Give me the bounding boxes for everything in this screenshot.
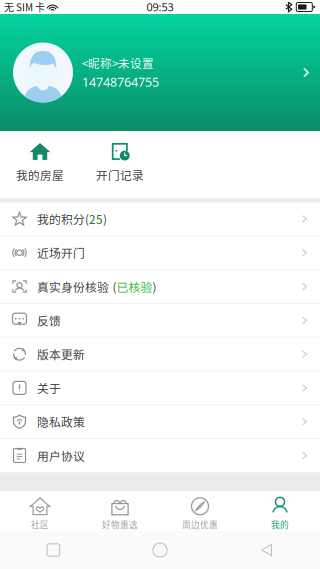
button[interactable]: 版本更新 xyxy=(0,338,320,371)
button[interactable]: Home xyxy=(107,531,213,569)
staticText: 版本更新 xyxy=(37,346,85,363)
staticText: ( xyxy=(85,210,89,227)
button[interactable]: Recent apps xyxy=(0,531,107,569)
button[interactable]: 隐私政策 xyxy=(0,405,320,439)
button[interactable]: 我的 xyxy=(240,491,320,531)
staticText: 我的积分 xyxy=(37,210,85,227)
staticText: 无 SIM 卡 xyxy=(4,0,45,14)
staticText: 09:53 xyxy=(146,0,173,14)
staticText: 隐私政策 xyxy=(37,413,85,430)
staticText: 好物惠选 xyxy=(102,518,138,531)
staticText: 我的 xyxy=(271,518,289,531)
staticText: 周边优惠 xyxy=(182,518,218,531)
button[interactable]: Back xyxy=(213,531,320,569)
button[interactable]: 社区 xyxy=(0,491,80,531)
staticText: 用户协议 xyxy=(37,447,85,464)
button[interactable]: 关于 xyxy=(0,371,320,405)
staticText: 14748764755 xyxy=(82,73,159,90)
button[interactable]: 用户协议 xyxy=(0,439,320,473)
staticText: ) xyxy=(103,210,107,227)
staticText: 关于 xyxy=(37,379,61,396)
button[interactable]: 好物惠选 xyxy=(80,491,160,531)
button[interactable]: 真实身份核验 xyxy=(0,270,320,304)
button[interactable]: 反馈 xyxy=(0,304,320,338)
staticText: 已核验 xyxy=(116,278,152,295)
button[interactable]: 周边优惠 xyxy=(160,491,240,531)
staticText: 社区 xyxy=(31,518,49,531)
staticText: ( xyxy=(112,278,116,295)
staticText: 我的房屋 xyxy=(16,167,64,183)
button[interactable]: 近场开门 xyxy=(0,236,320,270)
button[interactable]: 开门记录 xyxy=(80,130,160,199)
staticText: 25 xyxy=(89,210,103,227)
staticText: <昵称>未设置 xyxy=(82,54,154,71)
button[interactable]: <昵称>未设置 xyxy=(0,14,320,131)
staticText: 反馈 xyxy=(37,312,61,329)
staticText: 开门记录 xyxy=(96,167,144,183)
staticText: ) xyxy=(152,278,156,295)
button[interactable]: 我的房屋 xyxy=(0,130,80,199)
staticText: 真实身份核验 xyxy=(37,278,109,295)
staticText: 近场开门 xyxy=(37,244,85,261)
button[interactable]: 我的积分 xyxy=(0,202,320,236)
